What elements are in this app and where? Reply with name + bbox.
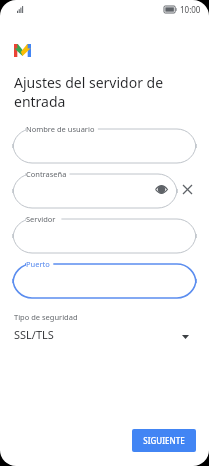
button[interactable]: Mostrar contraseña (153, 181, 169, 197)
staticText: Tipo de seguridad (14, 312, 78, 322)
staticText: 10:00 (180, 4, 201, 15)
button[interactable]: Contraseña (13, 170, 177, 208)
button[interactable]: Borrar (177, 179, 197, 199)
staticText: Nombre de usuario (26, 124, 95, 134)
staticText: Puerto (26, 259, 50, 269)
button[interactable]: Nombre de usuario (13, 125, 196, 163)
button[interactable]: Puerto (13, 260, 196, 298)
staticText: Ajustes del servidor de entrada (14, 73, 181, 111)
button[interactable]: SIGUIENTE (132, 429, 196, 452)
staticText: SIGUIENTE (143, 435, 185, 446)
button[interactable]: Tipo de seguridad (0, 312, 209, 342)
staticText: Servidor (26, 214, 56, 224)
staticText: Contraseña (26, 169, 67, 179)
button[interactable]: Servidor (13, 215, 196, 253)
staticText: SSL/TLS (14, 327, 54, 342)
